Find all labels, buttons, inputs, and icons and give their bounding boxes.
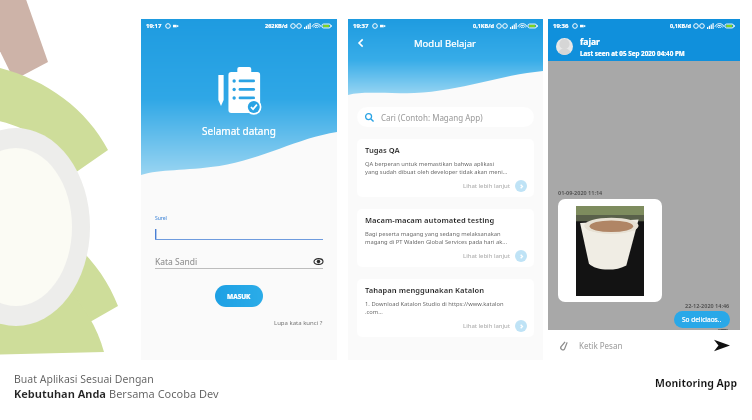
staticText: Buat Aplikasi Sesuai Dengan xyxy=(14,372,154,386)
staticText: So deliciaos.. xyxy=(682,315,722,324)
staticText: 262KB/d xyxy=(265,22,288,29)
staticText: Lihat lebih lanjut xyxy=(463,322,510,330)
staticText: MASUK xyxy=(227,292,251,301)
staticText: Ketik Pesan xyxy=(579,340,623,351)
button[interactable]: Open xyxy=(515,180,527,192)
button[interactable]: Tahapan menggunakan Katalon xyxy=(357,279,534,337)
button[interactable]: Cari (Contoh: Magang App) xyxy=(357,107,534,127)
staticText: Lihat lebih lanjut xyxy=(463,252,510,260)
button[interactable]: Back xyxy=(354,36,368,50)
button[interactable]: fajar xyxy=(556,32,732,61)
staticText: 0,1KB/d xyxy=(473,22,494,29)
button[interactable]: Macam-macam automated testing xyxy=(357,209,534,267)
staticText: 1. Download Katalon Studio di https://ww… xyxy=(365,300,504,316)
staticText: 01-09-2020 11:14 xyxy=(558,189,603,196)
staticText: 19:17 xyxy=(146,22,162,30)
button[interactable]: Tugas QA xyxy=(357,139,534,197)
other: Show password xyxy=(314,257,323,266)
button[interactable] xyxy=(558,199,662,302)
button[interactable]: MASUK xyxy=(215,285,263,307)
button[interactable]: Kata Sandi xyxy=(155,254,323,269)
button[interactable]: Open xyxy=(515,250,527,262)
staticText: Bersama Cocoba Dev xyxy=(109,386,219,401)
staticText: fajar xyxy=(580,36,600,48)
staticText: Bagi peserta magang yang sedang melaksan… xyxy=(365,230,507,246)
staticText: Selamat datang xyxy=(202,124,276,138)
staticText: QA berperan untuk memastikan bahwa aplik… xyxy=(365,160,508,176)
staticText: Modul Belajar xyxy=(414,37,477,50)
staticText: Monitoring App xyxy=(655,376,738,390)
staticText: Cari (Contoh: Magang App) xyxy=(381,112,483,123)
staticText: Last seen at 05 Sep 2020 04:40 PM xyxy=(580,49,685,58)
button[interactable]: Lupa kata kunci ? xyxy=(274,319,323,327)
staticText: Kebutuhan Anda xyxy=(14,386,109,401)
button[interactable]: Attach xyxy=(557,339,570,352)
button[interactable]: Send xyxy=(712,336,731,355)
button[interactable]: Ketik Pesan xyxy=(579,340,712,351)
staticText: Tugas QA xyxy=(365,145,400,155)
staticText: 19:37 xyxy=(353,22,369,30)
staticText: Surel xyxy=(155,215,167,222)
staticText: 22-12-2020 14:46 xyxy=(685,302,730,309)
staticText: Tahapan menggunakan Katalon xyxy=(365,285,485,295)
button[interactable] xyxy=(155,229,323,240)
button[interactable]: So deliciaos.. xyxy=(674,311,730,328)
staticText: 19:36 xyxy=(553,22,569,30)
staticText: Macam-macam automated testing xyxy=(365,215,495,225)
staticText: Kata Sandi xyxy=(155,256,198,268)
staticText: Lupa kata kunci ? xyxy=(274,319,323,327)
staticText: Lihat lebih lanjut xyxy=(463,182,510,190)
button[interactable]: Open xyxy=(515,320,527,332)
staticText: 0,1KB/d xyxy=(670,22,691,29)
